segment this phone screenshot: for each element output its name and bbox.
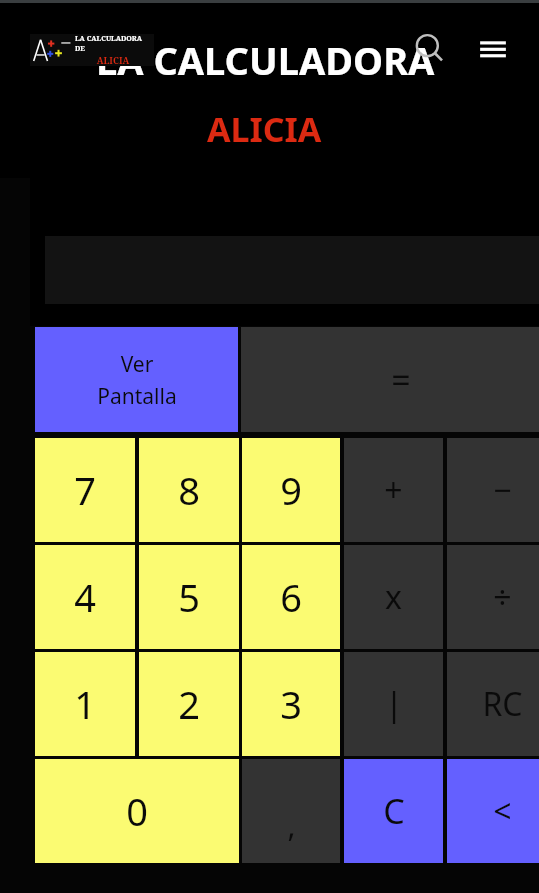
staticText: 4 — [74, 571, 96, 623]
staticText: | — [385, 682, 403, 726]
staticText: ÷ — [493, 575, 512, 619]
staticText: Ver Pantalla — [97, 350, 177, 410]
button[interactable]: < — [447, 759, 539, 863]
button[interactable]: 3 — [242, 652, 340, 756]
button[interactable]: 8 — [139, 438, 239, 542]
button[interactable]: Ver Pantalla — [35, 327, 238, 432]
staticText: 0 — [126, 785, 148, 837]
staticText: LA CALCULADORA DE — [75, 34, 151, 54]
button[interactable]: 1 — [35, 652, 135, 756]
staticText: 9 — [280, 464, 302, 516]
button[interactable]: La Calculadora de Alicia logo — [30, 34, 154, 66]
staticText: = — [391, 357, 411, 403]
button[interactable]: C — [344, 759, 443, 863]
button[interactable]: 9 — [242, 438, 340, 542]
staticText: 8 — [178, 464, 200, 516]
staticText: 3 — [280, 678, 302, 730]
button[interactable]: RC — [447, 652, 539, 756]
staticText: < — [493, 789, 512, 833]
button[interactable]: 5 — [139, 545, 239, 649]
button[interactable]: x — [344, 545, 443, 649]
staticText: − — [493, 468, 512, 512]
staticText: ALICIA — [207, 106, 322, 152]
staticText: C — [383, 788, 405, 834]
button[interactable]: 0 — [35, 759, 239, 863]
staticText: RC — [482, 682, 523, 726]
staticText: 6 — [280, 571, 302, 623]
staticText: 5 — [178, 571, 200, 623]
button[interactable]: | — [344, 652, 443, 756]
staticText: x — [385, 575, 402, 619]
staticText: + — [384, 468, 403, 512]
button[interactable]: 6 — [242, 545, 340, 649]
staticText: 2 — [178, 678, 200, 730]
staticText: ALICIA — [75, 54, 151, 66]
staticText: LA CALCULADORA — [96, 34, 435, 86]
button[interactable]: 7 — [35, 438, 135, 542]
button[interactable]: Search — [408, 28, 450, 70]
staticText: 1 — [74, 678, 96, 730]
staticText: 7 — [74, 464, 96, 516]
button[interactable]: 4 — [35, 545, 135, 649]
button[interactable]: Menu — [470, 30, 516, 76]
staticText: , — [287, 805, 296, 846]
button[interactable]: 2 — [139, 652, 239, 756]
